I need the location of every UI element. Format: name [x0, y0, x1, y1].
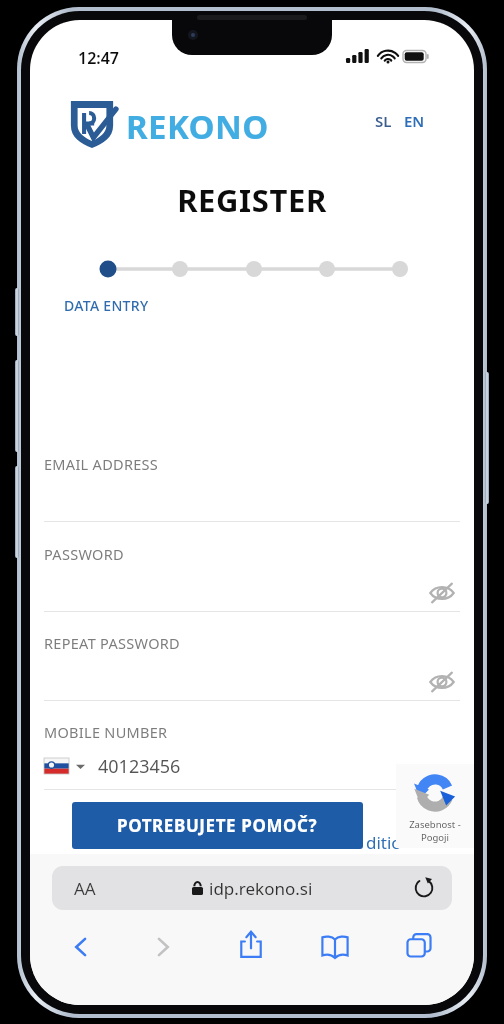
staticText: REGISTER [30, 179, 474, 221]
button[interactable]: Reload page [413, 877, 435, 899]
button[interactable]: POTREBUJETE POMOČ? [72, 802, 363, 849]
staticText: PASSWORD [44, 544, 124, 564]
button[interactable]: REKONO [68, 94, 292, 150]
staticText: Zasebnost - [396, 818, 474, 831]
staticText: EMAIL ADDRESS [44, 454, 159, 474]
button[interactable]: Show password [424, 664, 460, 700]
button[interactable]: Show password [424, 575, 460, 611]
staticText: ditio [366, 831, 402, 854]
staticText: DATA ENTRY [64, 296, 149, 315]
staticText: AA [74, 877, 96, 900]
button[interactable]: EN [401, 108, 428, 134]
staticText: POTREBUJETE POMOČ? [117, 814, 318, 837]
button[interactable]: AA [52, 866, 452, 910]
button[interactable]: Back [64, 930, 98, 964]
button[interactable]: Forward [146, 930, 180, 964]
button[interactable]: reCAPTCHA privacy badge [396, 764, 474, 848]
button[interactable]: 40123456 [44, 752, 224, 780]
button[interactable]: Share [233, 926, 269, 962]
other: Signal, Wi-Fi, battery [346, 48, 430, 66]
button[interactable]: Tabs [401, 927, 437, 963]
button[interactable]: Bookmarks [317, 928, 353, 964]
staticText: EN [404, 111, 425, 131]
staticText: REKONO [126, 104, 269, 149]
staticText: 12:47 [78, 47, 120, 69]
staticText: MOBILE NUMBER [44, 722, 168, 742]
staticText: SL [375, 111, 392, 131]
staticText: 40123456 [98, 754, 181, 779]
button[interactable]: SL [372, 108, 395, 134]
staticText: idp.rekono.si [209, 877, 313, 900]
staticText: Pogoji [396, 831, 474, 844]
staticText: REPEAT PASSWORD [44, 633, 180, 653]
